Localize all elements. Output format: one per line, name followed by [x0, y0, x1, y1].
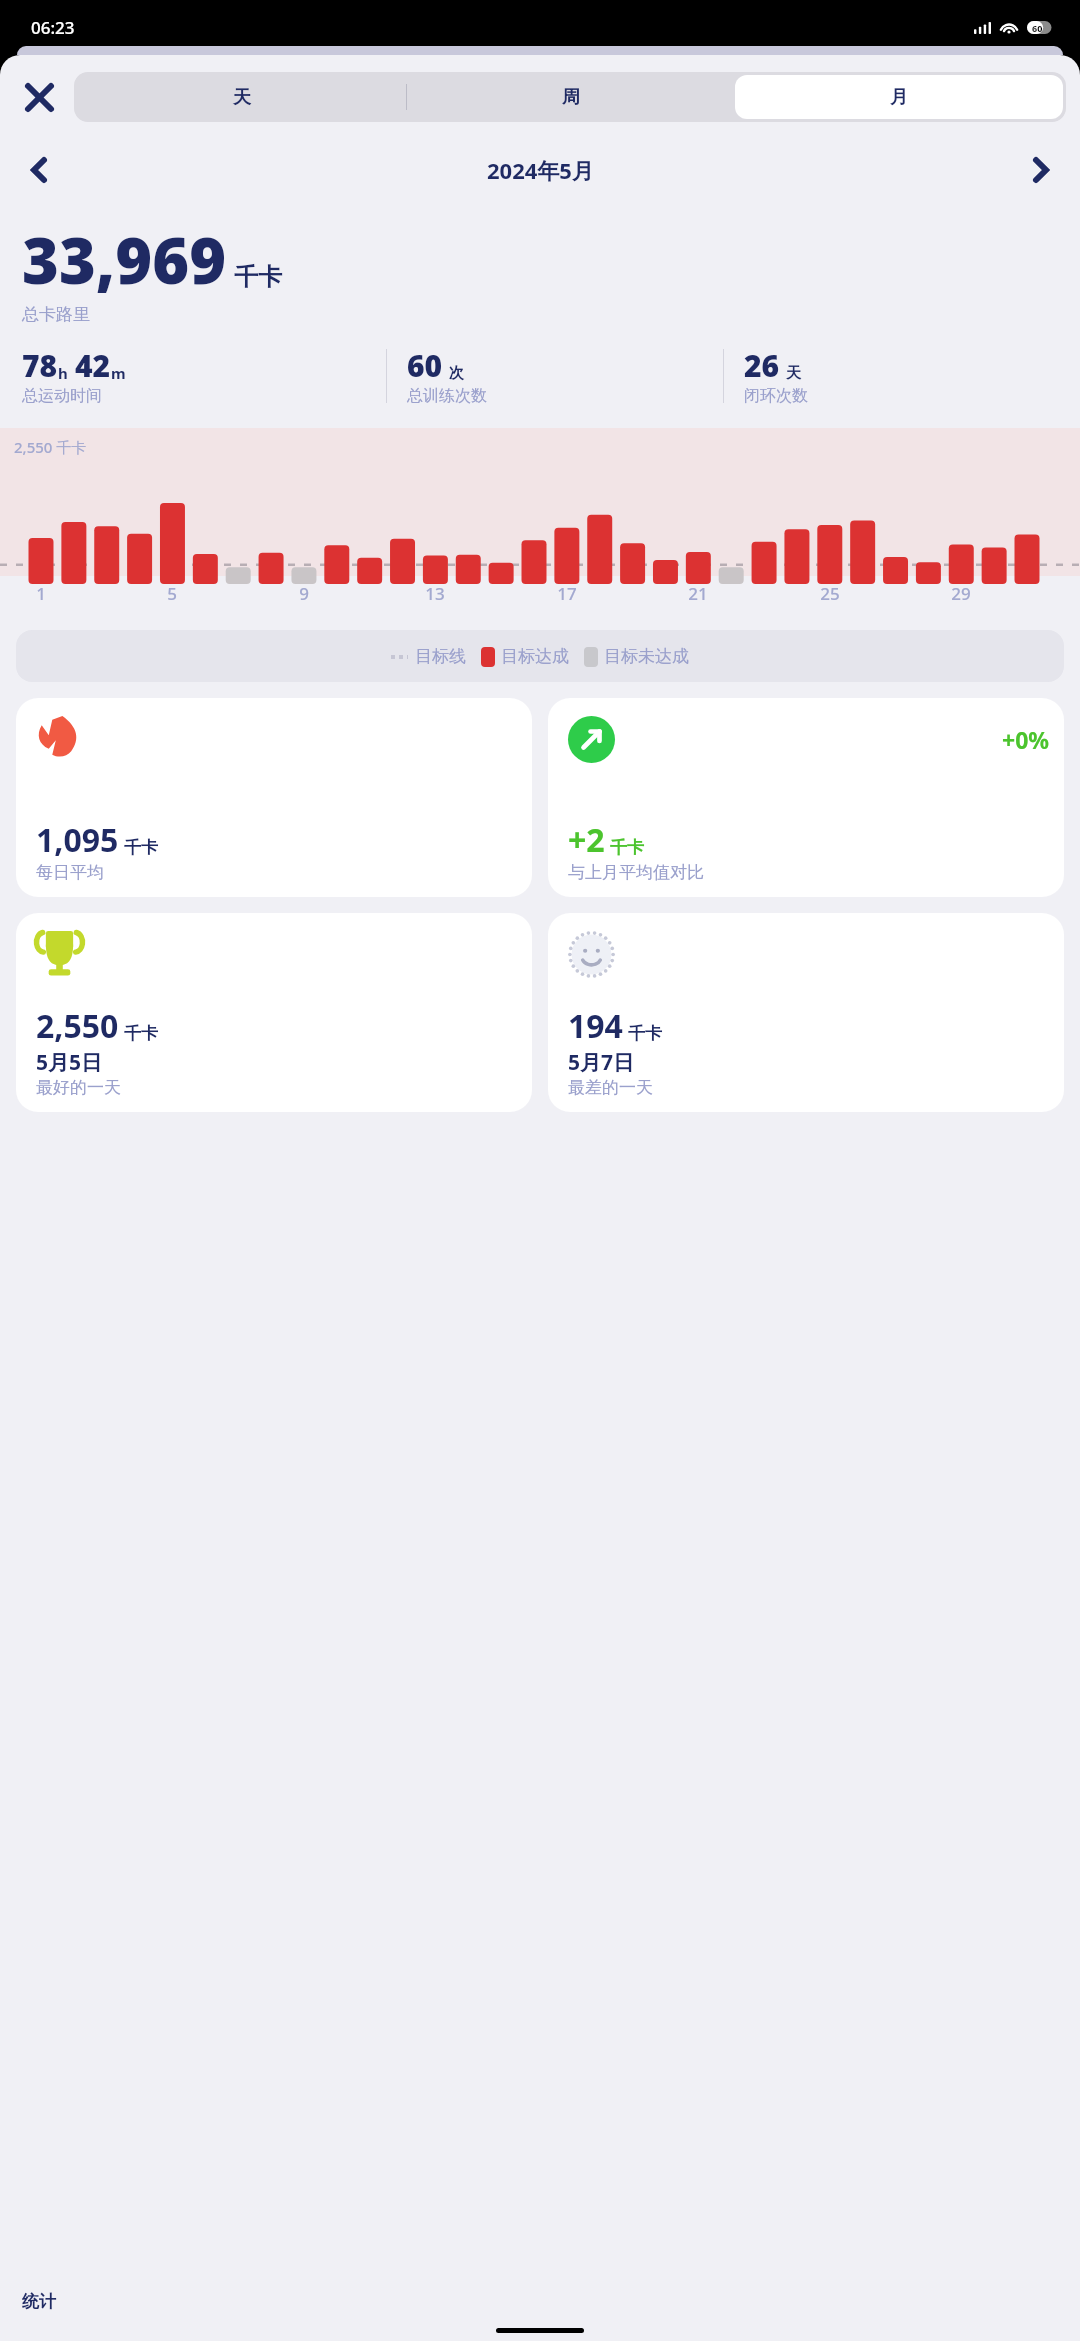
staticText: m: [111, 363, 126, 383]
staticText: 1,095: [36, 818, 119, 862]
staticText: 天: [786, 364, 801, 383]
staticText: 60: [407, 345, 443, 386]
staticText: 最好的一天: [36, 1077, 121, 1098]
staticText: 千卡: [628, 1023, 662, 1044]
staticText: 5月5日: [36, 1048, 103, 1077]
staticText: 与上月平均值对比: [568, 862, 704, 883]
staticText: 60: [1032, 22, 1043, 34]
staticText: 21: [678, 582, 718, 605]
staticText: 总运动时间: [22, 386, 102, 406]
staticText: 06:23: [31, 16, 75, 39]
staticText: 2,550: [36, 1004, 119, 1048]
staticText: 闭环次数: [744, 386, 808, 406]
staticText: 194: [568, 1004, 623, 1048]
staticText: 千卡: [610, 837, 644, 858]
staticText: 25: [810, 582, 850, 605]
staticText: 千卡: [234, 262, 282, 292]
staticText: 总卡路里: [22, 304, 90, 325]
button[interactable]: +0%: [548, 698, 1064, 897]
staticText: 13: [415, 582, 455, 605]
staticText: 目标未达成: [604, 646, 689, 667]
staticText: 千卡: [124, 837, 158, 858]
button[interactable]: 天: [77, 75, 406, 119]
staticText: +2: [568, 818, 605, 862]
staticText: 每日平均: [36, 862, 104, 883]
staticText: 2,550 千卡: [14, 437, 87, 457]
button[interactable]: 月: [735, 75, 1063, 119]
button[interactable]: Close: [14, 72, 64, 122]
button[interactable]: 194: [548, 913, 1064, 1112]
staticText: 目标线: [415, 646, 466, 667]
staticText: 17: [547, 582, 587, 605]
staticText: 2024年5月: [487, 155, 594, 185]
staticText: 1: [21, 582, 61, 605]
staticText: 78: [22, 345, 58, 386]
staticText: 统计: [22, 2291, 56, 2312]
staticText: 9: [284, 582, 324, 605]
staticText: 33,969: [22, 217, 227, 303]
staticText: 月: [890, 86, 908, 109]
staticText: 总训练次数: [407, 386, 487, 406]
button[interactable]: 周: [407, 75, 735, 119]
staticText: 千卡: [124, 1023, 158, 1044]
button[interactable]: 1,095: [16, 698, 532, 897]
button[interactable]: Previous month: [14, 145, 64, 195]
staticText: 5月7日: [568, 1048, 635, 1077]
staticText: 29: [941, 582, 981, 605]
staticText: 目标达成: [501, 646, 569, 667]
staticText: 最差的一天: [568, 1077, 653, 1098]
staticText: 次: [449, 364, 464, 383]
staticText: +0%: [1002, 724, 1050, 755]
button[interactable]: Next month: [1016, 145, 1066, 195]
staticText: 周: [562, 86, 580, 109]
staticText: 42: [75, 345, 111, 386]
button[interactable]: 2,550: [16, 913, 532, 1112]
staticText: 5: [152, 582, 192, 605]
staticText: 26: [744, 345, 780, 386]
staticText: 天: [233, 86, 251, 109]
staticText: h: [58, 363, 68, 383]
